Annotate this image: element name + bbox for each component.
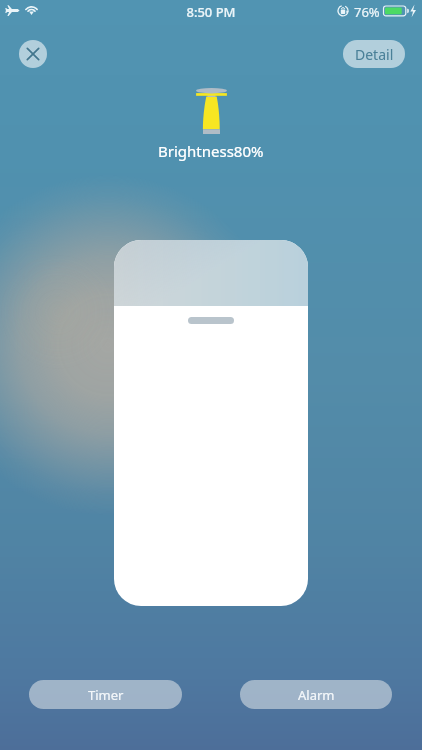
- button[interactable]: Alarm: [240, 680, 392, 709]
- staticText: 76%: [354, 3, 380, 21]
- staticText: Brightness80%: [158, 141, 264, 161]
- button[interactable]: Brightness slider: [114, 240, 308, 606]
- button[interactable]: Detail: [343, 40, 405, 68]
- staticText: Detail: [355, 45, 394, 64]
- button[interactable]: Close: [19, 40, 47, 68]
- staticText: 8:50 PM: [0, 3, 422, 21]
- staticText: Alarm: [298, 686, 335, 704]
- staticText: Timer: [88, 686, 124, 704]
- button[interactable]: Timer: [29, 680, 182, 709]
- button[interactable]: Brightness80%: [0, 88, 422, 161]
